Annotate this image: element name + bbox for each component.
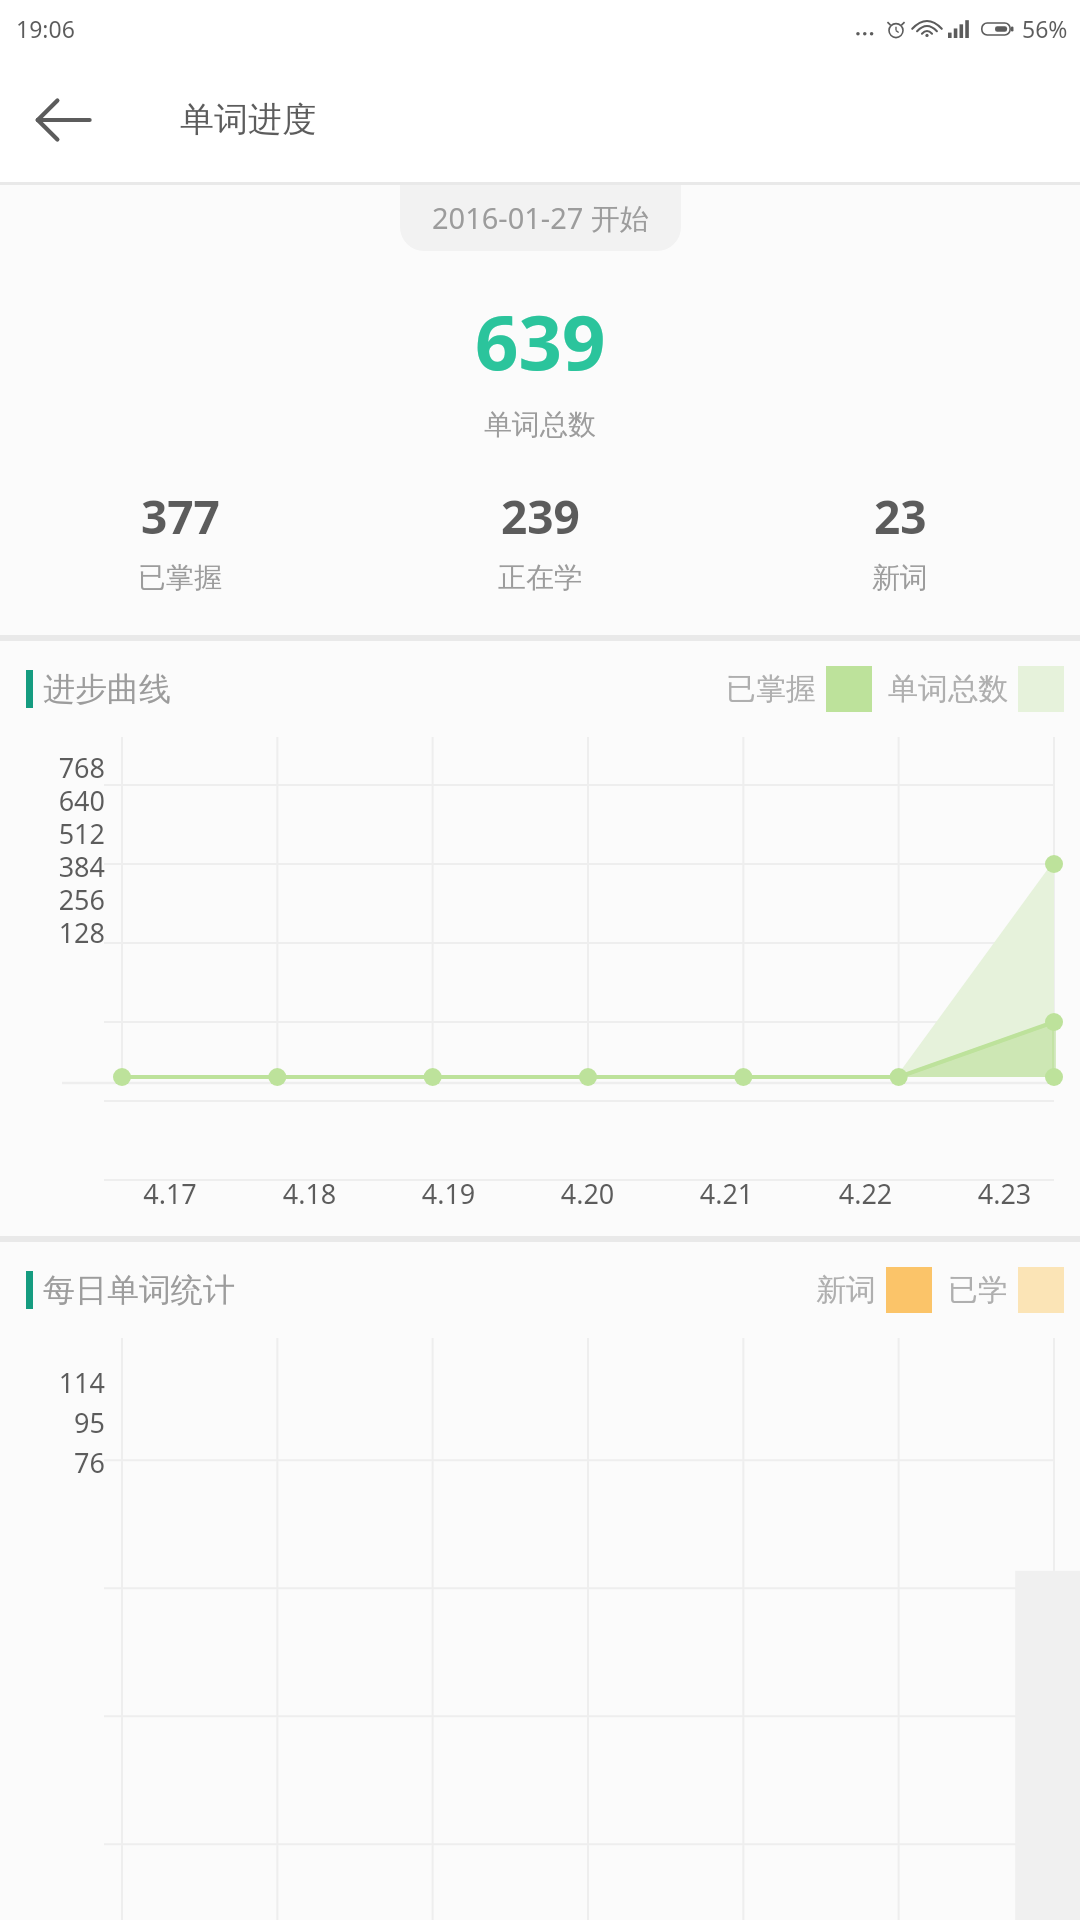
staticText: 76 — [0, 1444, 105, 1481]
staticText: 2016-01-27 开始 — [432, 198, 649, 238]
staticText: 4.17 — [100, 1175, 240, 1212]
staticText: 56% — [1022, 13, 1068, 44]
staticText: 128 — [0, 914, 105, 951]
staticText: 已学 — [948, 1271, 1008, 1309]
button[interactable]: 377 — [0, 485, 360, 595]
staticText: 4.21 — [657, 1175, 796, 1212]
staticText: 256 — [0, 881, 105, 918]
staticText: 正在学 — [498, 560, 582, 595]
staticText: 768 — [0, 749, 105, 786]
staticText: 4.22 — [796, 1175, 935, 1212]
staticText: 377 — [141, 485, 220, 548]
staticText: 4.20 — [518, 1175, 657, 1212]
staticText: 384 — [0, 848, 105, 885]
button[interactable]: Back — [28, 85, 98, 155]
staticText: 239 — [501, 485, 580, 548]
staticText: 新词 — [872, 560, 928, 595]
staticText: 114 — [0, 1364, 105, 1401]
button[interactable]: 2016-01-27 开始 — [400, 185, 681, 251]
staticText: 19:06 — [16, 13, 75, 44]
staticText: 已掌握 — [138, 560, 222, 595]
staticText: 512 — [0, 815, 105, 852]
staticText: 95 — [0, 1404, 105, 1441]
staticText: 已掌握 — [726, 670, 816, 708]
staticText: 4.23 — [935, 1175, 1074, 1212]
staticText: 单词总数 — [484, 407, 596, 442]
staticText: 4.18 — [240, 1175, 379, 1212]
staticText: 23 — [874, 485, 927, 548]
staticText: 进步曲线 — [43, 669, 171, 709]
staticText: 4.19 — [379, 1175, 518, 1212]
staticText: 新词 — [816, 1271, 876, 1309]
staticText: 640 — [0, 782, 105, 819]
button[interactable]: 23 — [720, 485, 1080, 595]
button[interactable]: 239 — [360, 485, 720, 595]
staticText: 单词进度 — [180, 98, 316, 141]
staticText: 单词总数 — [888, 670, 1008, 708]
staticText: 每日单词统计 — [43, 1270, 235, 1310]
staticText: 639 — [475, 289, 606, 393]
